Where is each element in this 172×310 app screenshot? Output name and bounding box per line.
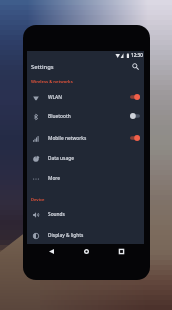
button[interactable]: Display & lights xyxy=(27,225,144,245)
staticText: Settings xyxy=(31,63,54,71)
button[interactable]: More xyxy=(27,168,144,188)
button[interactable]: Back xyxy=(46,246,57,257)
staticText: Wireless & networks xyxy=(31,79,73,85)
staticText: Bluetooth xyxy=(48,113,71,120)
staticText: Sounds xyxy=(48,211,65,218)
staticText: Data usage xyxy=(48,155,74,162)
button[interactable]: Mobile networks xyxy=(27,128,144,148)
staticText: Mobile networks xyxy=(48,135,87,142)
staticText: More xyxy=(48,175,61,182)
staticText: WLAN xyxy=(48,94,62,101)
button[interactable]: Search xyxy=(129,60,142,73)
staticText: Device xyxy=(31,197,45,203)
button[interactable]: Home xyxy=(81,246,92,257)
staticText: 12:30 xyxy=(131,52,143,58)
staticText: Display & lights xyxy=(48,232,84,239)
button[interactable]: Sounds xyxy=(27,204,144,224)
button[interactable]: Bluetooth xyxy=(27,106,144,126)
button[interactable]: WLAN xyxy=(27,87,144,107)
button[interactable]: Data usage xyxy=(27,148,144,168)
button[interactable]: Recents xyxy=(116,246,127,257)
